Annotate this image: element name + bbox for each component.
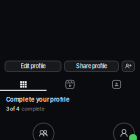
button[interactable]: Discover people bbox=[122, 61, 134, 72]
staticText: 3 of 4 bbox=[6, 106, 20, 112]
button[interactable]: Reels bbox=[47, 81, 93, 88]
staticText: Share profile bbox=[76, 63, 107, 70]
staticText: complete bbox=[22, 106, 45, 112]
staticText: Complete your profile bbox=[6, 96, 70, 103]
button[interactable]: Edit profile bbox=[5, 61, 61, 72]
staticText: Edit profile bbox=[20, 63, 45, 70]
button[interactable]: Share profile bbox=[64, 61, 118, 72]
button[interactable]: Posts bbox=[0, 81, 47, 88]
button[interactable]: Tagged bbox=[93, 81, 140, 88]
